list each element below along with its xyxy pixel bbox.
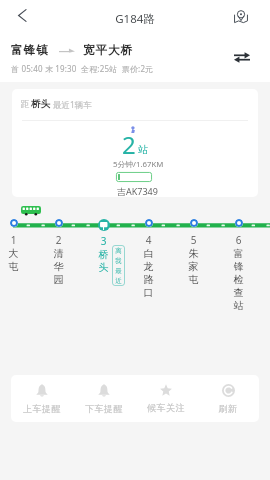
staticText: 5分钟/1.67KM	[113, 159, 164, 170]
staticText: 上车提醒	[11, 403, 73, 414]
button[interactable]: 5	[171, 219, 216, 286]
staticText: 距	[21, 99, 30, 110]
staticText: 桥头	[98, 248, 109, 274]
staticText: 宽平大桥	[83, 43, 134, 57]
button[interactable]: Map	[227, 2, 255, 30]
staticText: 离我最近	[115, 247, 122, 285]
staticText: 2	[122, 128, 136, 161]
staticText: 下车提醒	[73, 403, 135, 414]
button[interactable]: 距	[12, 89, 258, 197]
button[interactable]: 3	[81, 219, 126, 274]
staticText: 首 05:40 末 19:30 全程:25站 票价:2元	[11, 63, 154, 74]
button[interactable]: 刷新	[197, 375, 259, 414]
staticText: 朱家屯	[188, 247, 199, 286]
button[interactable]: 候车关注	[135, 375, 197, 413]
staticText: 刷新	[197, 403, 259, 414]
staticText: 大屯	[8, 247, 19, 273]
staticText: 1	[0, 233, 36, 247]
staticText: 桥头	[31, 98, 50, 110]
staticText: 站	[138, 143, 148, 156]
button[interactable]: 下车提醒	[73, 375, 135, 414]
staticText: 富锋检查站	[233, 247, 244, 312]
staticText: 3	[81, 234, 126, 248]
staticText: 6	[216, 233, 261, 247]
staticText: 吉AK7349	[117, 185, 158, 197]
staticText: G184路	[0, 11, 270, 27]
button[interactable]: 2	[36, 219, 81, 286]
staticText: 最近1辆车	[53, 99, 92, 111]
button[interactable]: 1	[0, 219, 36, 273]
staticText: 富锋镇	[11, 43, 49, 57]
button[interactable]: Back	[8, 2, 35, 29]
button[interactable]: 6	[216, 219, 261, 312]
button[interactable]: 上车提醒	[11, 375, 73, 414]
staticText: 2	[36, 233, 81, 247]
staticText: 4	[126, 233, 171, 247]
button[interactable]: 4	[126, 219, 171, 299]
staticText: 候车关注	[135, 402, 197, 413]
button[interactable]: Switch direction	[228, 43, 256, 71]
staticText: 清华园	[53, 247, 64, 286]
staticText: 白龙路口	[143, 247, 154, 299]
staticText: 5	[171, 233, 216, 247]
